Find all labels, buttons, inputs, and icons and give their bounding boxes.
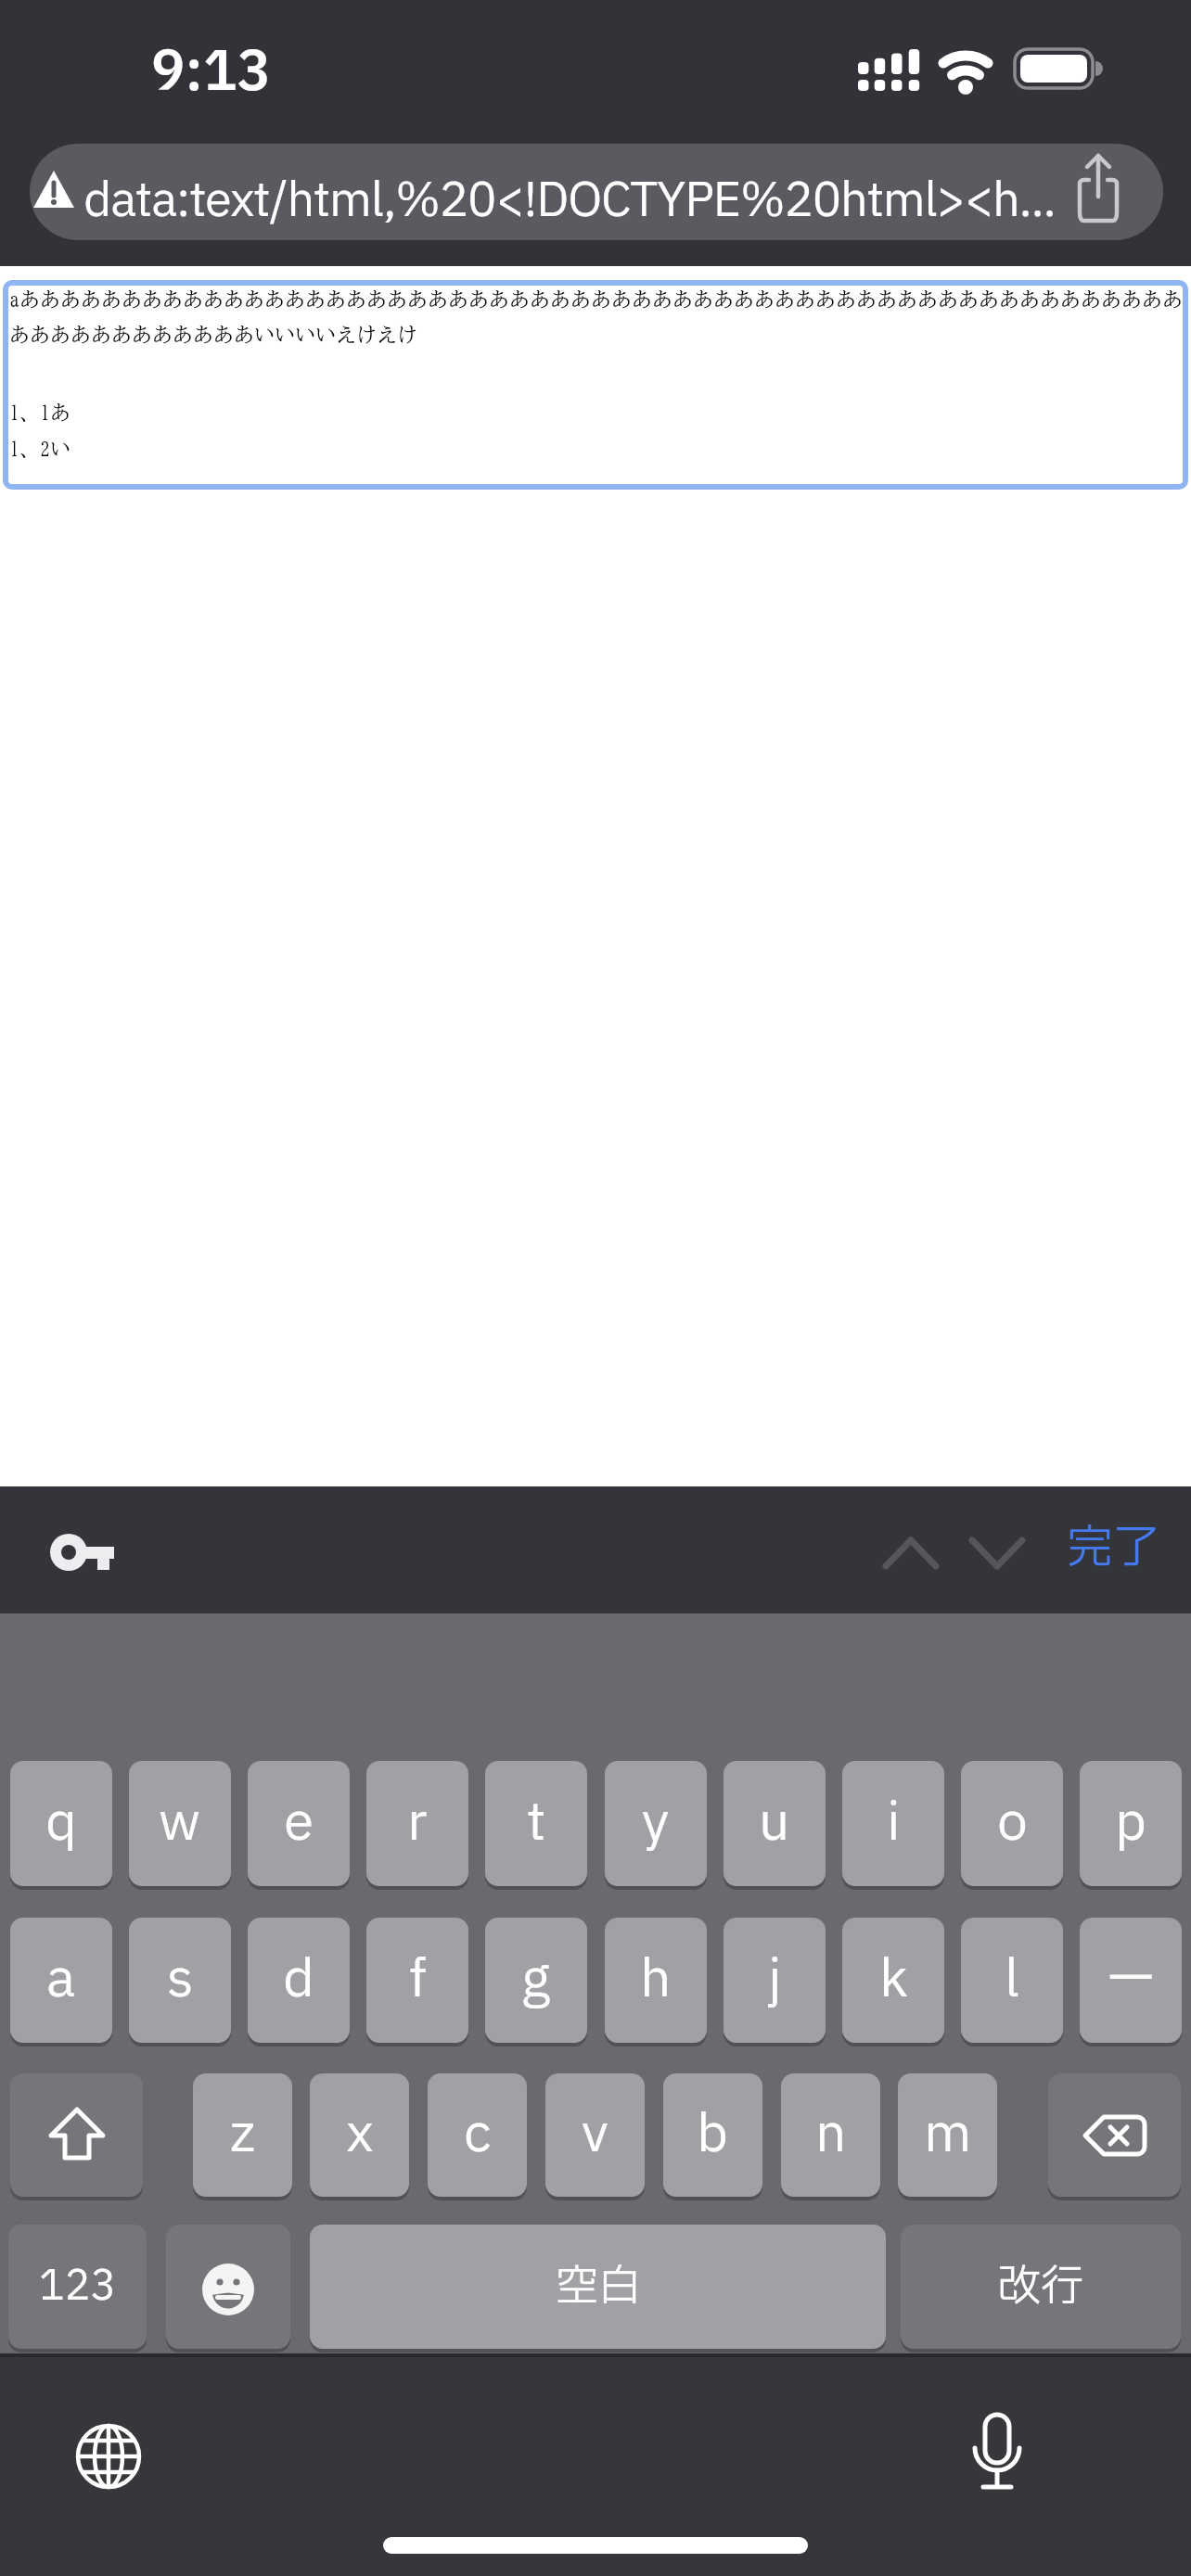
button[interactable]: k — [842, 1918, 944, 2043]
button[interactable]: c — [428, 2073, 527, 2197]
button[interactable]: q — [10, 1761, 112, 1886]
button[interactable] — [166, 2225, 290, 2349]
staticText: g — [521, 1942, 551, 2020]
staticText: h — [640, 1942, 672, 2020]
button[interactable] — [10, 2073, 143, 2197]
staticText: e — [284, 1785, 314, 1863]
button[interactable]: v — [545, 2073, 645, 2197]
staticText: r — [407, 1785, 428, 1863]
staticText: 9:13 — [151, 33, 271, 114]
staticText: ー — [1105, 1942, 1157, 2020]
staticText: m — [924, 2097, 972, 2174]
button[interactable] — [30, 144, 1163, 240]
staticText: 完了 — [1067, 1514, 1159, 1584]
staticText: aあああああああああああああああああああああああああああああああああああああああ… — [9, 289, 1183, 310]
staticText: s — [167, 1942, 194, 2020]
button[interactable] — [965, 2411, 1030, 2504]
button[interactable]: f — [366, 1918, 468, 2043]
button[interactable]: 完了 — [1057, 1511, 1169, 1586]
staticText: 1、2い — [9, 439, 70, 459]
staticText: t — [527, 1785, 546, 1863]
staticText: b — [697, 2097, 729, 2174]
button[interactable]: l — [961, 1918, 1063, 2043]
button[interactable]: n — [781, 2073, 880, 2197]
button[interactable]: m — [898, 2073, 997, 2197]
button[interactable] — [963, 1530, 1032, 1576]
staticText: x — [346, 2097, 374, 2174]
button[interactable]: ー — [1080, 1918, 1182, 2043]
staticText: q — [45, 1785, 78, 1863]
staticText: i — [887, 1785, 901, 1863]
staticText: u — [759, 1785, 790, 1863]
button[interactable]: w — [129, 1761, 231, 1886]
staticText: o — [997, 1785, 1028, 1863]
staticText: 1、1あ — [9, 402, 70, 423]
staticText: ああああああああああああいいいいえけえけ — [9, 325, 417, 345]
button[interactable]: h — [605, 1918, 707, 2043]
staticText: v — [582, 2097, 608, 2174]
button[interactable]: 改行 — [901, 2225, 1181, 2349]
button[interactable]: b — [663, 2073, 762, 2197]
button[interactable] — [877, 1530, 946, 1576]
button[interactable]: a — [10, 1918, 112, 2043]
button[interactable] — [1076, 152, 1124, 226]
staticText: y — [642, 1785, 670, 1863]
staticText: 空白 — [556, 2255, 641, 2319]
button[interactable]: e — [248, 1761, 350, 1886]
button[interactable]: i — [842, 1761, 944, 1886]
button[interactable]: u — [724, 1761, 826, 1886]
button[interactable]: r — [366, 1761, 468, 1886]
staticText: c — [464, 2097, 492, 2174]
staticText: w — [159, 1785, 201, 1863]
button[interactable] — [74, 2422, 143, 2491]
staticText: l — [1005, 1942, 1019, 2020]
staticText: p — [1115, 1785, 1147, 1863]
staticText: 123 — [39, 2256, 117, 2317]
staticText: f — [409, 1942, 427, 2020]
staticText: n — [815, 2097, 847, 2174]
button[interactable]: d — [248, 1918, 350, 2043]
button[interactable]: t — [485, 1761, 587, 1886]
button[interactable]: s — [129, 1918, 231, 2043]
button[interactable] — [45, 1525, 119, 1581]
button[interactable]: g — [485, 1918, 587, 2043]
button[interactable]: p — [1080, 1761, 1182, 1886]
staticText: z — [230, 2097, 256, 2174]
button[interactable]: 空白 — [310, 2225, 886, 2349]
staticText: d — [283, 1942, 315, 2020]
staticText: a — [46, 1942, 76, 2020]
button[interactable] — [1048, 2073, 1181, 2197]
button[interactable]: y — [605, 1761, 707, 1886]
button[interactable]: 123 — [8, 2225, 147, 2349]
button[interactable]: x — [310, 2073, 409, 2197]
button[interactable]: j — [724, 1918, 826, 2043]
staticText: k — [879, 1942, 908, 2020]
staticText: 改行 — [998, 2255, 1083, 2319]
button[interactable]: o — [961, 1761, 1063, 1886]
button[interactable] — [3, 280, 1188, 490]
staticText: data:text/html,%20<!DOCTYPE%20html><h... — [83, 167, 1056, 236]
button[interactable]: z — [193, 2073, 292, 2197]
staticText: j — [768, 1942, 782, 2020]
